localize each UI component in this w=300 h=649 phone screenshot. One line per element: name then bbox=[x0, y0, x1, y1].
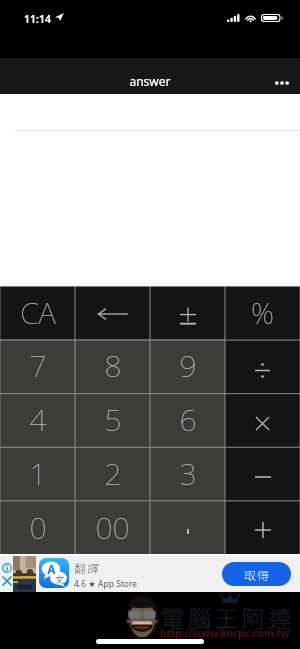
staticText: 8 bbox=[104, 345, 122, 386]
staticText: 5 bbox=[104, 399, 122, 440]
staticText: CA bbox=[20, 292, 56, 333]
button[interactable]: Minus bbox=[225, 446, 300, 500]
button[interactable]: 4 bbox=[0, 392, 75, 446]
button[interactable]: 3 bbox=[150, 446, 225, 500]
button[interactable]: More options bbox=[267, 68, 297, 98]
button[interactable]: 2 bbox=[75, 446, 150, 500]
button[interactable]: 6 bbox=[150, 392, 225, 446]
staticText: 6 bbox=[179, 399, 197, 440]
button[interactable]: 0 bbox=[0, 500, 75, 554]
staticText: 4 bbox=[29, 399, 47, 440]
button[interactable]: CA bbox=[0, 286, 75, 339]
button[interactable]: Close ad bbox=[2, 576, 12, 586]
staticText: 譯 bbox=[87, 559, 100, 576]
staticText: 9 bbox=[179, 345, 197, 386]
staticText: 得 bbox=[257, 566, 270, 583]
button[interactable]: 取 bbox=[222, 562, 291, 586]
button[interactable]: % bbox=[225, 286, 300, 339]
button[interactable]: Ad information bbox=[2, 563, 12, 573]
staticText: answer bbox=[129, 73, 171, 89]
staticText: 翻 bbox=[74, 559, 87, 576]
button[interactable]: 00 bbox=[75, 500, 150, 554]
staticText: 王 bbox=[215, 600, 238, 633]
button[interactable]: Divide bbox=[225, 339, 300, 392]
staticText: 0 bbox=[29, 507, 47, 548]
button[interactable]: Plus bbox=[225, 500, 300, 554]
button[interactable]: Backspace bbox=[75, 286, 150, 339]
staticText: 腦 bbox=[188, 600, 211, 633]
button[interactable]: Decimal point bbox=[150, 500, 225, 554]
staticText: 2 bbox=[104, 453, 122, 494]
staticText: 1 bbox=[29, 453, 47, 494]
staticText: 阿 bbox=[242, 600, 265, 633]
staticText: 3 bbox=[179, 453, 197, 494]
staticText: % bbox=[251, 293, 274, 332]
staticText: 4.6 ★ App Store bbox=[74, 578, 138, 590]
staticText: 取 bbox=[244, 566, 257, 583]
staticText: 7 bbox=[29, 345, 47, 386]
staticText: 11:14 bbox=[24, 12, 51, 26]
button[interactable]: Multiply bbox=[225, 392, 300, 446]
staticText: 電 bbox=[161, 600, 184, 633]
staticText: 00 bbox=[95, 507, 130, 548]
button[interactable]: 9 bbox=[150, 339, 225, 392]
staticText: http://www.kocpc.com.tw bbox=[160, 626, 290, 640]
button[interactable]: 1 bbox=[0, 446, 75, 500]
staticText: A bbox=[47, 561, 56, 577]
staticText: 文 bbox=[55, 573, 65, 586]
staticText: 達 bbox=[269, 600, 292, 633]
button[interactable]: 5 bbox=[75, 392, 150, 446]
button[interactable]: Plus minus bbox=[150, 286, 225, 339]
button[interactable]: 7 bbox=[0, 339, 75, 392]
button[interactable]: 8 bbox=[75, 339, 150, 392]
